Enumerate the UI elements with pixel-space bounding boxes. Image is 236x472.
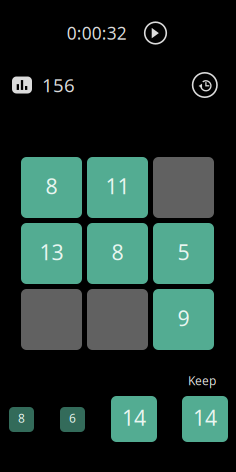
button[interactable]: Tile 8 <box>87 223 148 284</box>
button[interactable]: Queued tile 6 <box>60 407 85 432</box>
staticText: 13 <box>39 238 63 266</box>
button[interactable]: Tile 5 <box>153 223 214 284</box>
button[interactable]: Tile 11 <box>87 157 148 218</box>
staticText: 6 <box>69 410 76 426</box>
button[interactable]: Empty tile <box>87 289 148 350</box>
staticText: 14 <box>193 403 217 432</box>
staticText: 5 <box>177 238 189 266</box>
staticText: 0:00:32 <box>67 21 127 44</box>
staticText: 8 <box>18 410 25 426</box>
staticText: 156 <box>42 73 75 97</box>
staticText: 11 <box>105 172 129 200</box>
button[interactable]: Empty tile <box>153 157 214 218</box>
button[interactable]: History <box>193 73 217 97</box>
button[interactable]: Score 156 <box>12 73 75 97</box>
button[interactable]: Start timer <box>145 22 166 44</box>
staticText: 14 <box>122 403 146 432</box>
button[interactable]: Tile 13 <box>21 223 82 284</box>
button[interactable]: Current tile 14 <box>111 396 157 442</box>
button[interactable]: Queued tile 8 <box>9 407 34 432</box>
staticText: 9 <box>177 304 189 332</box>
button[interactable]: Tile 8 <box>21 157 82 218</box>
button[interactable]: Tile 9 <box>153 289 214 350</box>
button[interactable]: Keep tile 14 <box>182 396 228 442</box>
staticText: 8 <box>45 172 57 200</box>
staticText: 8 <box>111 238 123 266</box>
staticText: Keep <box>188 372 216 388</box>
button[interactable]: Empty tile <box>21 289 82 350</box>
